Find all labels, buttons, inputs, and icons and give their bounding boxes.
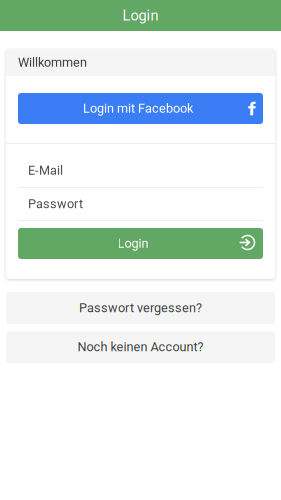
staticText: Passwort vergessen? — [79, 301, 202, 315]
staticText: Login — [122, 7, 158, 24]
button[interactable]: Noch keinen Account? — [6, 331, 275, 363]
staticText: Login — [117, 236, 148, 251]
button[interactable]: Login — [18, 228, 263, 259]
staticText: E-Mail — [28, 163, 63, 178]
staticText: Login mit Facebook — [83, 101, 193, 116]
staticText: Passwort — [28, 197, 83, 211]
button[interactable]: Passwort vergessen? — [6, 292, 275, 324]
staticText: Willkommen — [18, 55, 87, 70]
staticText: Noch keinen Account? — [77, 340, 203, 354]
button[interactable]: Login mit Facebook — [18, 93, 263, 124]
